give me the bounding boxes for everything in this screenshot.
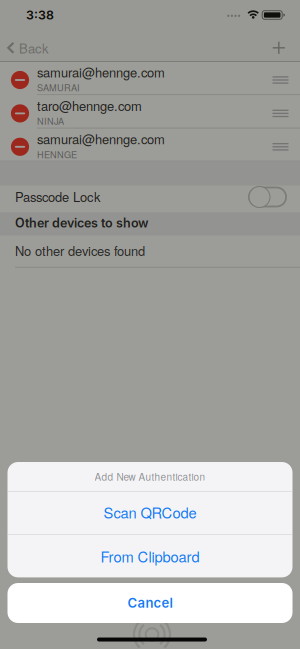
button[interactable]: Back bbox=[7, 37, 77, 59]
staticText: From Clipboard bbox=[100, 546, 199, 567]
button[interactable]: Cancel bbox=[7, 583, 292, 623]
staticText: NINJA bbox=[37, 114, 64, 127]
staticText: Cancel bbox=[127, 595, 172, 611]
button[interactable]: Delete bbox=[11, 138, 29, 156]
button[interactable]: Passcode Lock bbox=[248, 186, 287, 207]
staticText: Other devices to show bbox=[15, 215, 149, 230]
staticText: Passcode Lock bbox=[15, 187, 100, 206]
staticText: samurai@hennge.com bbox=[37, 63, 165, 81]
staticText: 3:38 bbox=[26, 7, 54, 22]
button[interactable]: Delete bbox=[11, 71, 29, 89]
staticText: Back bbox=[19, 38, 49, 57]
button[interactable]: Delete bbox=[11, 104, 29, 122]
button[interactable]: Add bbox=[273, 42, 285, 54]
button[interactable]: Reorder bbox=[272, 76, 288, 84]
button[interactable]: Reorder bbox=[272, 110, 288, 117]
button[interactable]: From Clipboard bbox=[7, 535, 292, 577]
staticText: taro@hennge.com bbox=[37, 96, 142, 114]
button[interactable]: Scan QRCode bbox=[7, 492, 292, 534]
staticText: SAMURAI bbox=[37, 81, 80, 94]
staticText: Add New Authentication bbox=[94, 469, 205, 484]
staticText: No other devices found bbox=[15, 241, 145, 259]
staticText: HENNGE bbox=[37, 148, 77, 161]
staticText: Scan QRCode bbox=[103, 502, 196, 523]
button[interactable]: Reorder bbox=[272, 143, 288, 151]
staticText: samurai@hennge.com bbox=[37, 129, 165, 148]
